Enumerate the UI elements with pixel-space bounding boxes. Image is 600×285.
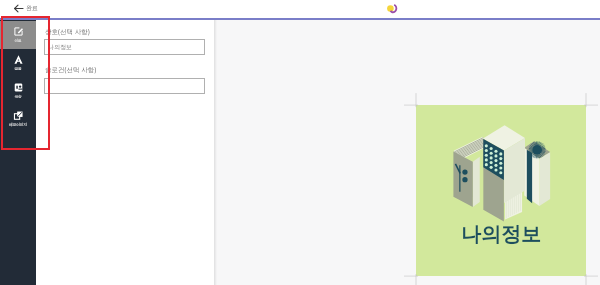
other: Back [13, 3, 23, 13]
button[interactable] [44, 78, 205, 94]
button[interactable]: 글꼴 [0, 49, 36, 77]
button[interactable]: 나의정보 [44, 39, 205, 55]
staticText: 색상 [14, 95, 22, 100]
staticText: 완료 [26, 4, 38, 12]
staticText: 상호(선택 사항) [45, 27, 90, 36]
staticText: 글꼴 [14, 67, 22, 72]
staticText: 배경이미지 [9, 123, 27, 128]
button[interactable]: 이름 [0, 21, 36, 49]
button[interactable]: 색상 [0, 77, 36, 105]
staticText: 슬로건(선택 사항) [45, 65, 97, 74]
staticText: 나의정보 [48, 43, 72, 51]
button[interactable]: 나의정보 [416, 105, 586, 276]
button[interactable]: Back [12, 1, 39, 15]
staticText: 이름 [14, 39, 22, 44]
staticText: 나의정보 [416, 222, 586, 247]
button[interactable]: 배경이미지 [0, 105, 36, 133]
